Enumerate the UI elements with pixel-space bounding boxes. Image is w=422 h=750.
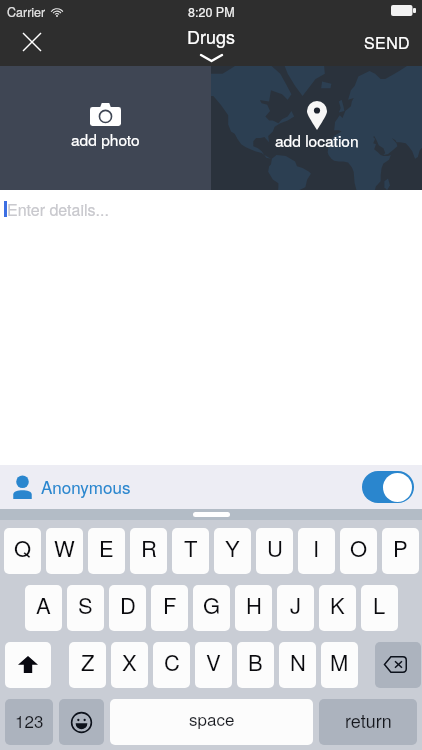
staticText: 123 bbox=[15, 708, 44, 732]
button[interactable]: M bbox=[321, 642, 358, 688]
staticText: T bbox=[184, 532, 198, 564]
button[interactable]: add photo bbox=[0, 66, 211, 190]
button[interactable]: add location bbox=[211, 66, 422, 190]
button[interactable]: return bbox=[319, 699, 417, 745]
staticText: O bbox=[350, 532, 368, 564]
button[interactable]: Anonymous toggle bbox=[362, 471, 414, 503]
staticText: Q bbox=[14, 532, 32, 564]
button[interactable]: space bbox=[110, 699, 313, 745]
button[interactable]: B bbox=[237, 642, 274, 688]
staticText: V bbox=[206, 646, 221, 678]
staticText: Carrier bbox=[7, 3, 46, 21]
button[interactable]: SEND bbox=[364, 31, 411, 54]
staticText: SEND bbox=[364, 31, 411, 54]
button[interactable]: N bbox=[279, 642, 316, 688]
staticText: C bbox=[164, 646, 180, 678]
staticText: R bbox=[141, 532, 157, 564]
staticText: Z bbox=[81, 646, 95, 678]
staticText: Y bbox=[225, 532, 240, 564]
button[interactable]: Backspace bbox=[375, 642, 421, 688]
staticText: H bbox=[246, 589, 262, 621]
button[interactable]: Shift bbox=[5, 642, 51, 688]
staticText: D bbox=[120, 589, 136, 621]
button[interactable]: V bbox=[195, 642, 232, 688]
staticText: space bbox=[189, 706, 235, 730]
button[interactable]: Close bbox=[16, 27, 46, 57]
button[interactable]: W bbox=[46, 528, 83, 574]
button[interactable]: Z bbox=[69, 642, 106, 688]
button[interactable]: Q bbox=[4, 528, 41, 574]
staticText: add photo bbox=[71, 128, 140, 150]
button[interactable]: D bbox=[109, 585, 146, 631]
button[interactable]: 123 bbox=[5, 699, 53, 745]
staticText: F bbox=[163, 589, 177, 621]
button[interactable]: X bbox=[111, 642, 148, 688]
staticText: Enter details... bbox=[7, 198, 109, 221]
button[interactable]: F bbox=[151, 585, 188, 631]
button[interactable]: C bbox=[153, 642, 190, 688]
button[interactable]: L bbox=[361, 585, 398, 631]
button[interactable]: A bbox=[25, 585, 62, 631]
button[interactable]: K bbox=[319, 585, 356, 631]
button[interactable]: H bbox=[235, 585, 272, 631]
button[interactable]: J bbox=[277, 585, 314, 631]
button[interactable]: Drugs bbox=[187, 23, 236, 61]
staticText: add location bbox=[275, 129, 359, 151]
staticText: 8:20 PM bbox=[188, 3, 235, 21]
staticText: I bbox=[313, 532, 320, 564]
button[interactable]: G bbox=[193, 585, 230, 631]
button[interactable]: Y bbox=[214, 528, 251, 574]
button[interactable]: O bbox=[340, 528, 377, 574]
staticText: U bbox=[267, 532, 283, 564]
staticText: Anonymous bbox=[41, 474, 131, 498]
staticText: L bbox=[373, 589, 386, 621]
staticText: W bbox=[54, 532, 75, 564]
staticText: S bbox=[78, 589, 93, 621]
button[interactable]: U bbox=[256, 528, 293, 574]
staticText: X bbox=[122, 646, 137, 678]
button[interactable]: Anonymous bbox=[0, 465, 422, 509]
button[interactable]: I bbox=[298, 528, 335, 574]
button[interactable]: Emoji bbox=[59, 699, 104, 745]
button[interactable]: R bbox=[130, 528, 167, 574]
button[interactable]: P bbox=[382, 528, 419, 574]
staticText: return bbox=[345, 707, 392, 733]
staticText: P bbox=[393, 532, 408, 564]
staticText: E bbox=[99, 532, 114, 564]
button[interactable]: S bbox=[67, 585, 104, 631]
staticText: G bbox=[203, 589, 221, 621]
staticText: B bbox=[248, 646, 263, 678]
staticText: N bbox=[290, 646, 306, 678]
staticText: A bbox=[36, 589, 51, 621]
staticText: K bbox=[330, 589, 345, 621]
staticText: Drugs bbox=[187, 23, 236, 49]
staticText: M bbox=[330, 646, 349, 678]
staticText: J bbox=[290, 589, 302, 621]
button[interactable]: E bbox=[88, 528, 125, 574]
button[interactable]: T bbox=[172, 528, 209, 574]
